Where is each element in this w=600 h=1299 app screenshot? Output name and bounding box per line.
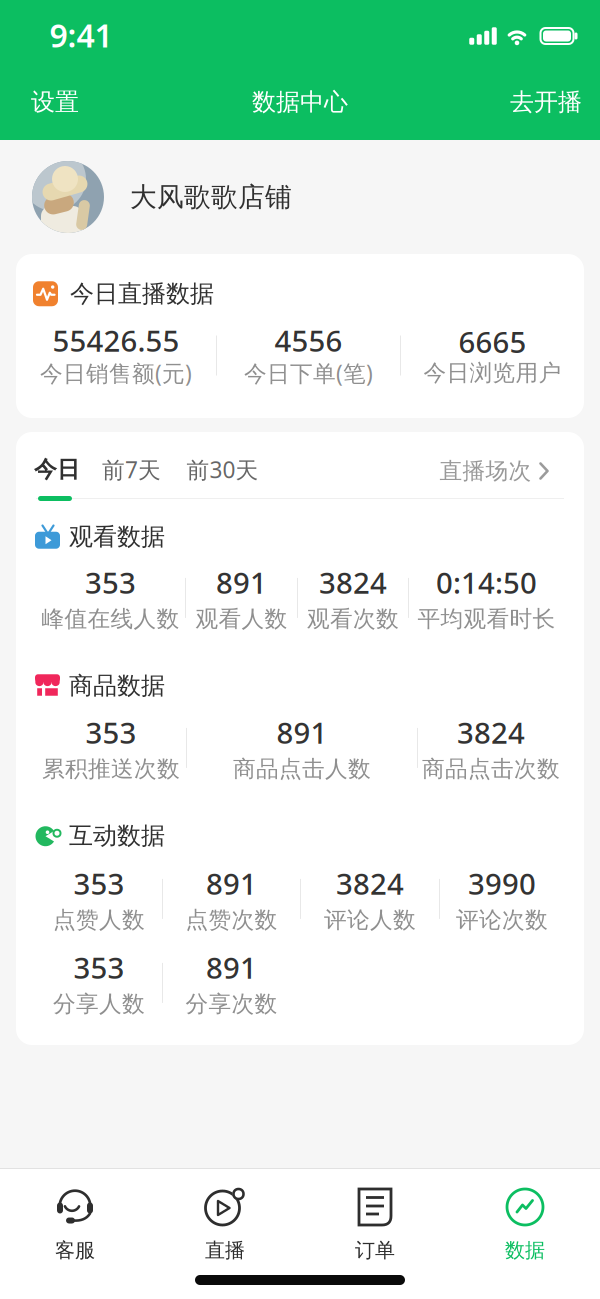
staticText: 观看次数 xyxy=(307,605,399,633)
staticText: 观看人数 xyxy=(195,605,287,633)
staticText: 今日下单(笔) xyxy=(244,358,373,388)
staticText: 大风歌歌店铺 xyxy=(130,181,292,213)
staticText: 353 xyxy=(73,948,124,987)
staticText: 353 xyxy=(85,713,136,752)
staticText: 9:41 xyxy=(49,14,112,56)
staticText: 互动数据 xyxy=(69,821,165,850)
staticText: 累积推送次数 xyxy=(42,755,180,783)
staticText: 直播场次 xyxy=(439,457,531,485)
staticText: 直播 xyxy=(205,1238,245,1263)
staticText: 设置 xyxy=(31,87,79,117)
staticText: 前30天 xyxy=(186,454,258,484)
staticText: 点赞次数 xyxy=(185,906,277,934)
button[interactable]: 直播场次 xyxy=(439,457,549,485)
staticText: 观看数据 xyxy=(69,522,165,551)
staticText: 353 xyxy=(85,563,136,602)
staticText: 3990 xyxy=(468,864,536,903)
staticText: 峰值在线人数 xyxy=(41,605,179,633)
staticText: 今日 xyxy=(34,456,80,483)
staticText: 891 xyxy=(206,864,257,903)
staticText: 3824 xyxy=(319,563,387,602)
button[interactable]: 前7天 xyxy=(102,454,161,484)
staticText: 客服 xyxy=(55,1238,95,1263)
button[interactable]: 直播 xyxy=(150,1169,300,1299)
staticText: 4556 xyxy=(274,321,342,360)
staticText: 0:14:50 xyxy=(436,563,537,602)
button[interactable]: 客服 xyxy=(0,1169,150,1299)
staticText: 评论次数 xyxy=(456,906,548,934)
staticText: 891 xyxy=(206,948,257,987)
button[interactable]: 订单 xyxy=(300,1169,450,1299)
staticText: 数据中心 xyxy=(252,87,348,117)
staticText: 3824 xyxy=(457,713,525,752)
staticText: 商品点击次数 xyxy=(422,755,560,783)
staticText: 点赞人数 xyxy=(53,906,145,934)
staticText: 今日直播数据 xyxy=(70,279,214,308)
staticText: 55426.55 xyxy=(52,321,179,360)
staticText: 平均观看时长 xyxy=(417,605,555,633)
staticText: 今日浏览用户 xyxy=(423,359,561,387)
staticText: 891 xyxy=(216,563,267,602)
staticText: 分享次数 xyxy=(185,990,277,1018)
staticText: 评论人数 xyxy=(324,906,416,934)
staticText: 商品点击人数 xyxy=(233,755,371,783)
button[interactable]: 前30天 xyxy=(186,454,258,484)
staticText: 前7天 xyxy=(102,454,161,484)
staticText: 3824 xyxy=(336,864,404,903)
staticText: 订单 xyxy=(355,1238,395,1263)
staticText: 数据 xyxy=(505,1238,545,1263)
staticText: 6665 xyxy=(458,322,526,361)
staticText: 353 xyxy=(73,864,124,903)
staticText: 分享人数 xyxy=(53,990,145,1018)
button[interactable]: 数据 xyxy=(450,1169,600,1299)
button[interactable]: 今日 xyxy=(34,456,80,483)
button[interactable]: 去开播 xyxy=(510,87,582,117)
button[interactable]: 设置 xyxy=(31,87,79,117)
staticText: 商品数据 xyxy=(69,671,165,700)
staticText: 去开播 xyxy=(510,87,582,117)
staticText: 891 xyxy=(276,713,327,752)
staticText: 今日销售额(元) xyxy=(40,358,192,388)
button[interactable]: 大风歌歌店铺 xyxy=(0,140,600,254)
